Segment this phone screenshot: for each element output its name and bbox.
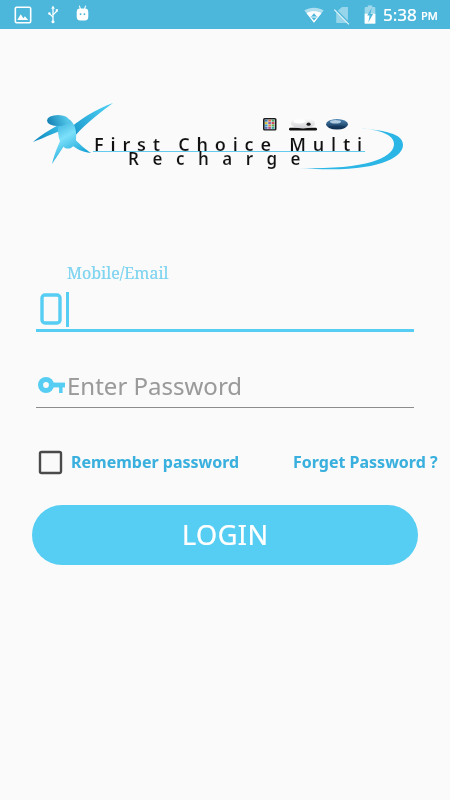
staticText: LOGIN [182,516,269,553]
staticText: Remember password [71,451,240,473]
button[interactable]: Remember password [34,445,246,479]
staticText: Forget Password ? [293,451,438,473]
button[interactable]: Forget Password ? [287,445,444,479]
staticText: Recharge [128,147,314,170]
staticText: First Choice Multi [94,132,369,157]
button[interactable]: LOGIN [32,505,418,565]
staticText: PM [421,8,438,23]
staticText: Mobile/Email [67,262,169,284]
button[interactable]: Mobile or Email input [36,288,414,332]
staticText: Enter Password [67,369,243,402]
button[interactable]: Enter Password [36,364,414,408]
staticText: 5:38 [383,3,417,26]
